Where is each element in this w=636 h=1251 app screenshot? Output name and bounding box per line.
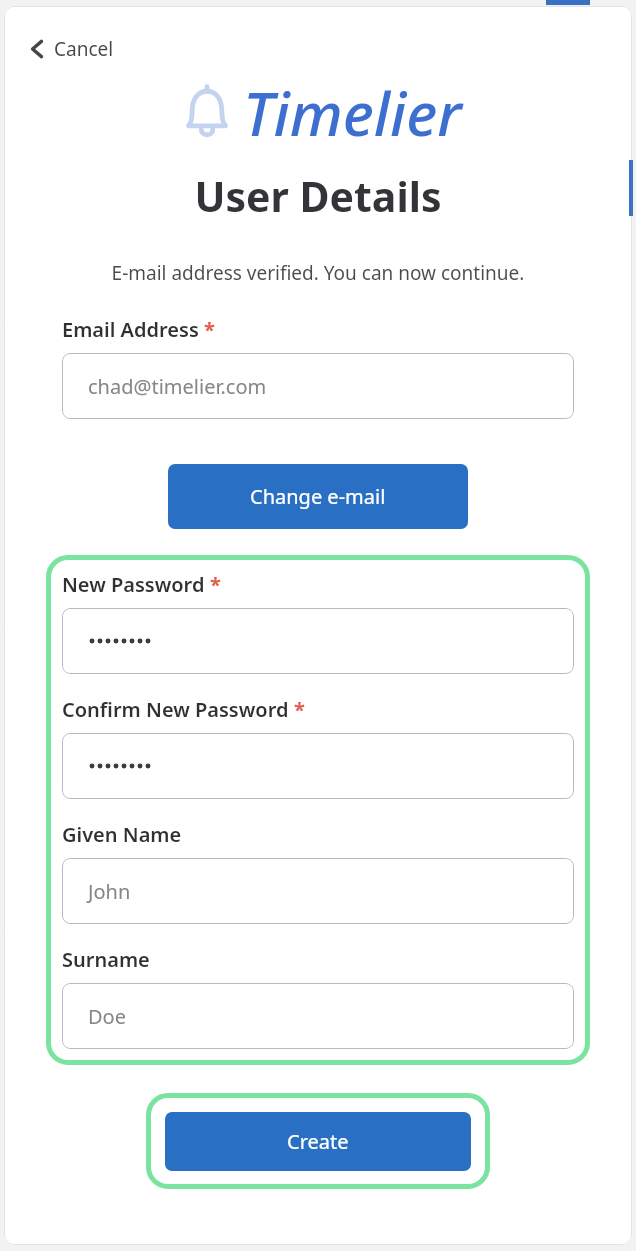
staticText: E-mail address verified. You can now con… — [0, 260, 636, 286]
button[interactable]: Doe — [62, 983, 574, 1049]
staticText: Create — [287, 1128, 349, 1155]
staticText: John — [88, 878, 131, 905]
button[interactable]: Cancel — [26, 32, 118, 66]
staticText: * — [210, 571, 221, 598]
staticText: Change e-mail — [250, 483, 386, 510]
staticText: Given Name — [62, 821, 182, 848]
button[interactable] — [62, 608, 574, 674]
button[interactable]: John — [62, 858, 574, 924]
button[interactable]: Create — [165, 1112, 471, 1171]
staticText: * — [204, 316, 215, 343]
button[interactable]: Change e-mail — [168, 464, 468, 529]
staticText: chad@timelier.com — [88, 373, 267, 400]
staticText: Timelier — [243, 72, 462, 154]
button[interactable]: chad@timelier.com — [62, 353, 574, 419]
staticText: Doe — [88, 1003, 126, 1030]
button[interactable] — [62, 733, 574, 799]
staticText: Confirm New Password — [62, 696, 289, 723]
staticText: Cancel — [54, 36, 114, 62]
staticText: User Details — [0, 168, 636, 224]
staticText: Email Address — [62, 316, 199, 343]
staticText: * — [294, 696, 305, 723]
staticText: New Password — [62, 571, 205, 598]
staticText: Surname — [62, 946, 150, 973]
